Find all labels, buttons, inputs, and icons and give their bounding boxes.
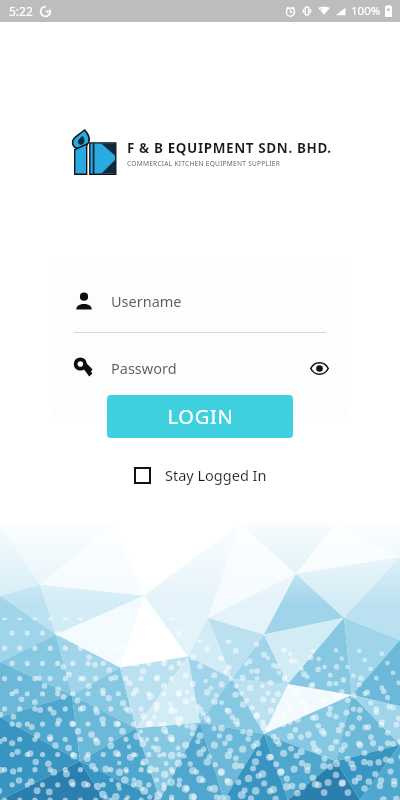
button[interactable]: Username bbox=[50, 279, 350, 323]
button[interactable]: Password bbox=[50, 346, 350, 390]
staticText: Username bbox=[111, 291, 182, 311]
staticText: Password bbox=[111, 358, 177, 378]
staticText: COMMERCIAL KITCHEN EQUIPMENT SUPPLIER bbox=[127, 159, 281, 168]
button[interactable]: Stay Logged In bbox=[130, 461, 271, 489]
staticText: 100% bbox=[351, 3, 381, 19]
staticText: 5:22 bbox=[9, 3, 33, 19]
staticText: Stay Logged In bbox=[165, 465, 267, 485]
button[interactable]: Show password bbox=[306, 355, 332, 381]
staticText: F & B EQUIPMENT SDN. BHD. bbox=[127, 139, 332, 157]
button[interactable]: LOGIN bbox=[107, 395, 293, 438]
staticText: LOGIN bbox=[167, 403, 234, 430]
